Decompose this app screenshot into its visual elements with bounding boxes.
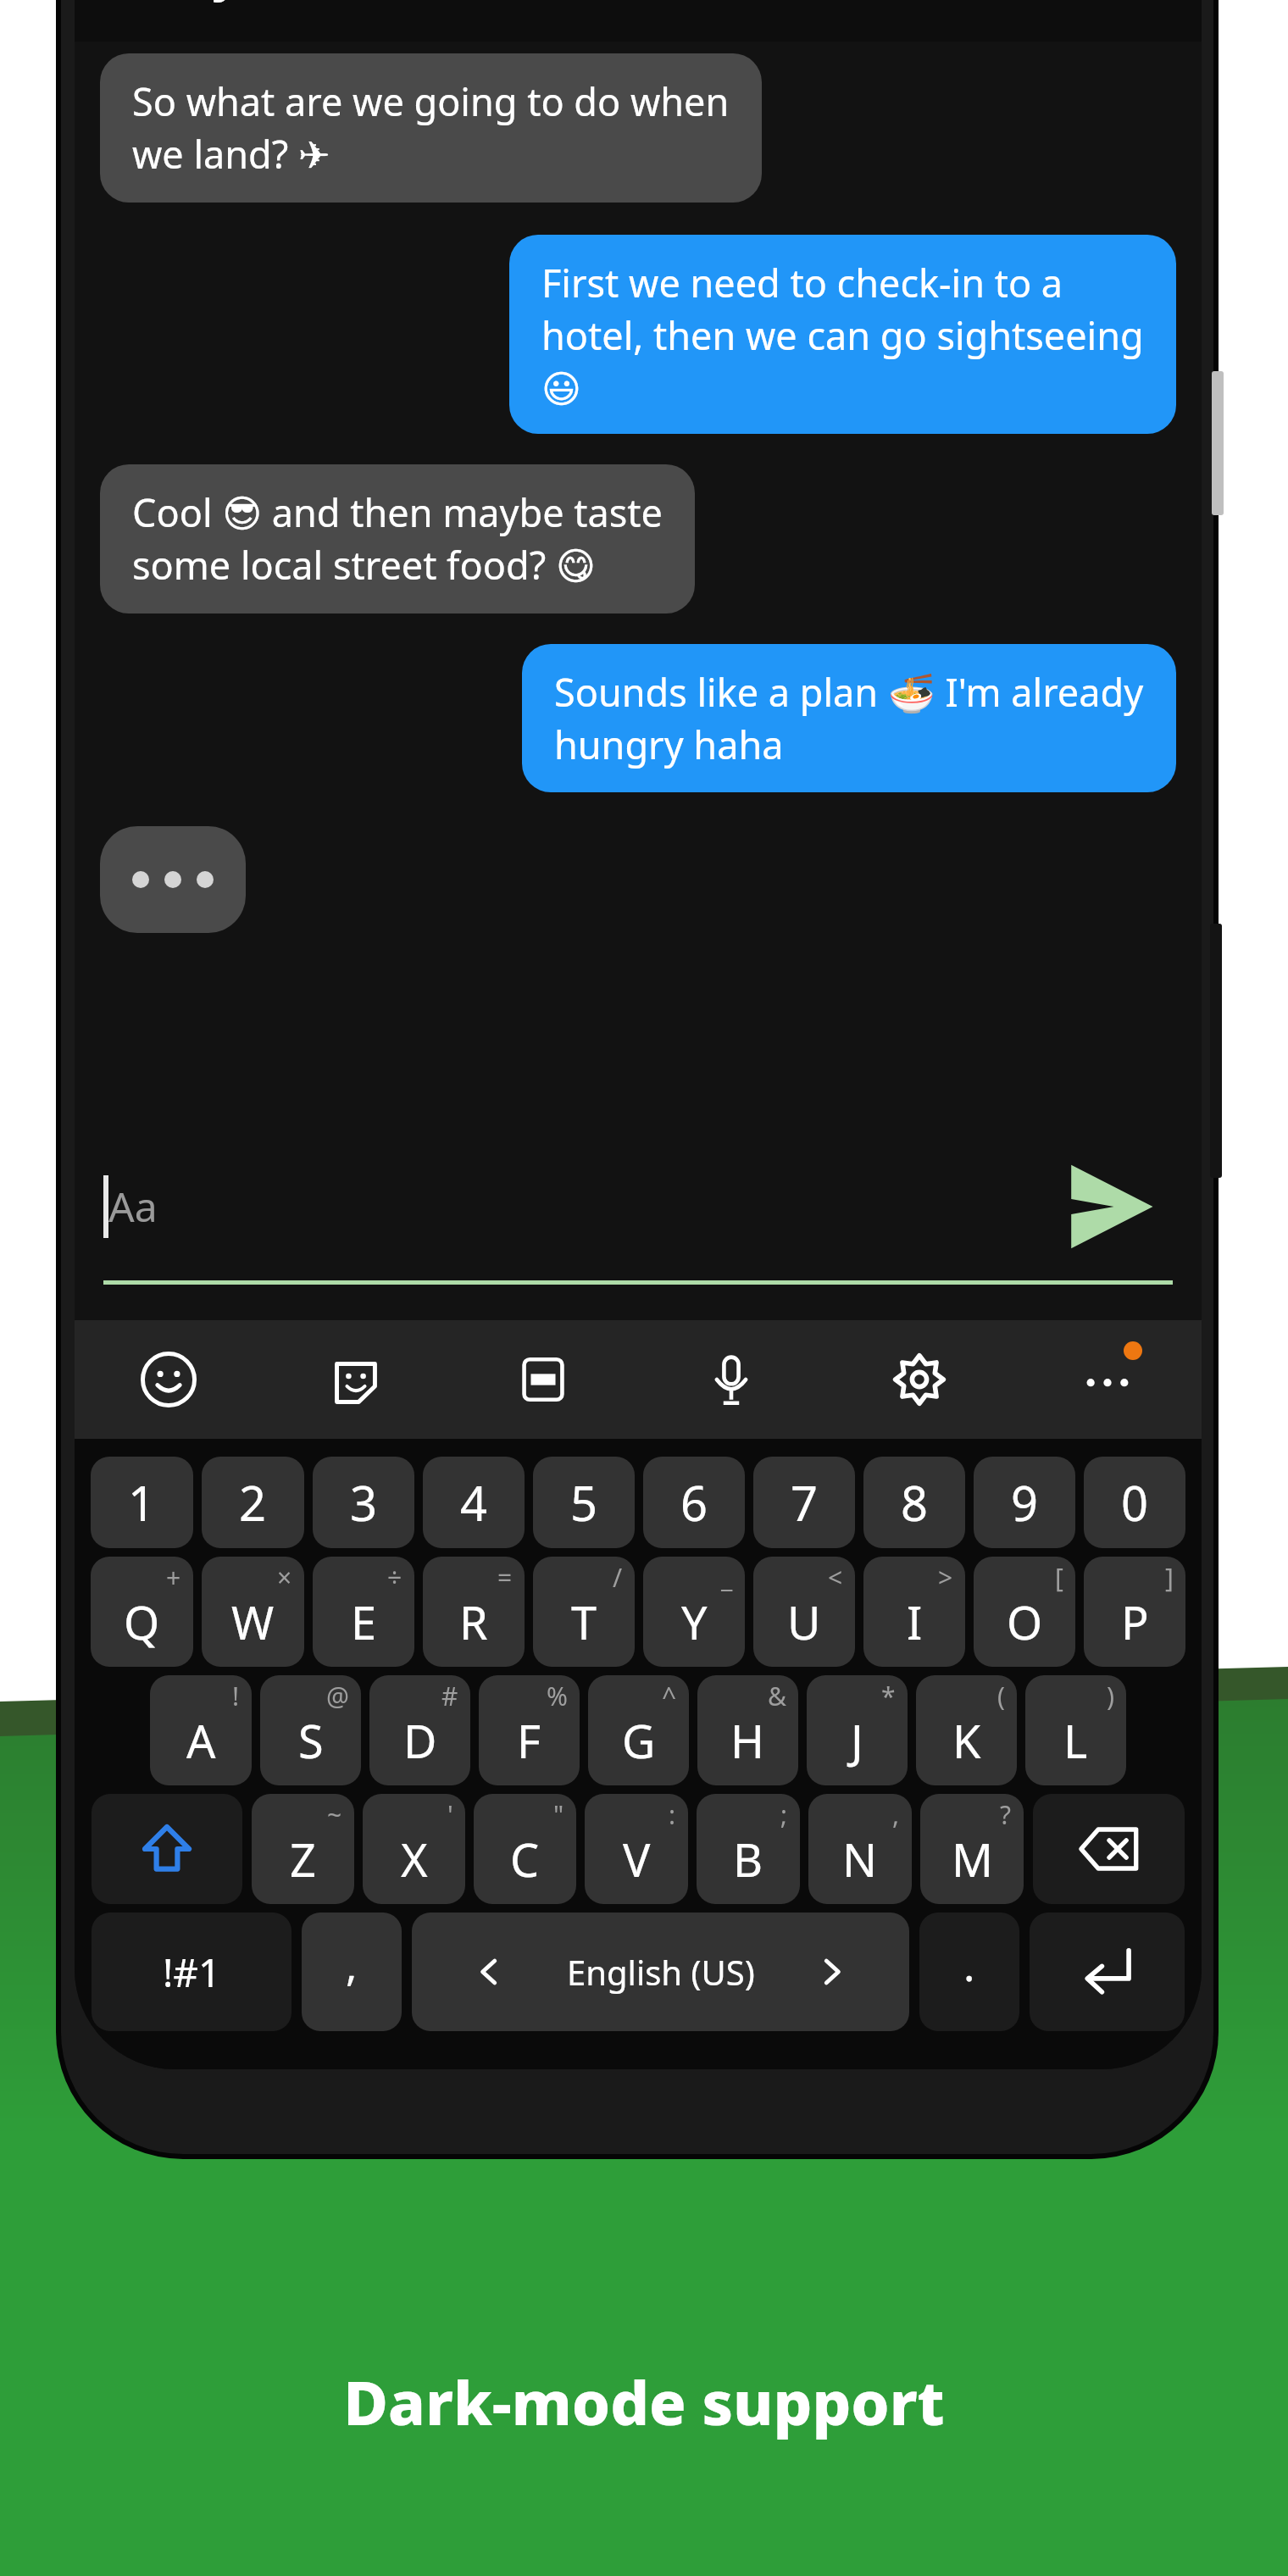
button[interactable]: ; <box>697 1794 800 1904</box>
staticText: J <box>851 1709 863 1772</box>
button[interactable]: English (US) <box>412 1913 909 2031</box>
button[interactable]: Shift <box>92 1794 242 1904</box>
staticText: Z <box>290 1828 316 1890</box>
button[interactable]: Voice input <box>637 1320 825 1439</box>
button[interactable]: % <box>479 1675 580 1785</box>
staticText: . <box>963 1936 975 1994</box>
staticText: K <box>952 1709 981 1772</box>
button[interactable]: 7 <box>753 1457 855 1548</box>
staticText: O <box>1007 1591 1043 1653</box>
button[interactable]: ( <box>916 1675 1017 1785</box>
staticText: E <box>351 1591 377 1653</box>
staticText: !#1 <box>163 1946 221 1999</box>
staticText: = <box>497 1560 513 1595</box>
button[interactable]: & <box>697 1675 798 1785</box>
button[interactable]: , <box>808 1794 912 1904</box>
button[interactable]: = <box>423 1557 525 1667</box>
button[interactable]: < <box>753 1557 855 1667</box>
button[interactable]: 5 <box>533 1457 635 1548</box>
staticText: A <box>186 1709 216 1772</box>
staticText: So what are we going to do when we land?… <box>132 75 730 180</box>
button[interactable]: GIF <box>449 1320 637 1439</box>
button[interactable]: 2 <box>202 1457 304 1548</box>
staticText: ) <box>1107 1679 1114 1713</box>
button[interactable]: / <box>533 1557 635 1667</box>
staticText: Aa <box>108 1179 158 1234</box>
staticText: C <box>510 1828 540 1890</box>
staticText: N <box>842 1828 878 1890</box>
button[interactable]: @ <box>260 1675 361 1785</box>
staticText: " <box>553 1797 564 1832</box>
button[interactable]: ) <box>1025 1675 1126 1785</box>
button[interactable]: 8 <box>863 1457 965 1548</box>
button[interactable]: First we need to check-in to a hotel, th… <box>509 235 1176 434</box>
button[interactable]: ' <box>363 1794 465 1904</box>
button[interactable]: Settings <box>825 1320 1013 1439</box>
staticText: ~ <box>327 1797 342 1832</box>
staticText: ( <box>997 1679 1005 1713</box>
staticText: + <box>166 1560 181 1595</box>
button[interactable]: 9 <box>974 1457 1075 1548</box>
staticText: 8 <box>901 1470 929 1535</box>
staticText: * <box>881 1679 896 1713</box>
button[interactable]: Backspace <box>1033 1794 1185 1904</box>
button[interactable]: . <box>919 1913 1019 2031</box>
button[interactable]: 6 <box>643 1457 745 1548</box>
button[interactable]: 1 <box>91 1457 193 1548</box>
button[interactable]: ~ <box>252 1794 354 1904</box>
button[interactable]: 0 <box>1084 1457 1185 1548</box>
button[interactable]: + <box>91 1557 193 1667</box>
button[interactable]: !#1 <box>92 1913 291 2031</box>
button[interactable]: ! <box>150 1675 252 1785</box>
staticText: ! <box>232 1679 240 1713</box>
button[interactable]: Stickers <box>262 1320 449 1439</box>
staticText: : <box>669 1797 676 1832</box>
button[interactable] <box>100 826 246 933</box>
button[interactable]: _ <box>643 1557 745 1667</box>
button[interactable]: Enter <box>1030 1913 1185 2031</box>
button[interactable]: ] <box>1084 1557 1185 1667</box>
button[interactable]: ^ <box>588 1675 689 1785</box>
staticText: 6 <box>680 1470 708 1535</box>
button[interactable]: Aa <box>103 1132 1046 1280</box>
button[interactable]: Sounds like a plan 🍜 I'm already hungry … <box>522 644 1176 792</box>
staticText: , <box>892 1797 900 1832</box>
button[interactable]: ÷ <box>313 1557 414 1667</box>
staticText: ? <box>1000 1797 1012 1832</box>
staticText: 2 <box>239 1470 267 1535</box>
button[interactable]: * <box>807 1675 908 1785</box>
button[interactable]: > <box>863 1557 965 1667</box>
staticText: F <box>517 1709 541 1772</box>
button[interactable]: Emoji <box>75 1320 262 1439</box>
button[interactable]: 4 <box>423 1457 525 1548</box>
staticText: [ <box>1055 1560 1063 1595</box>
staticText: English (US) <box>567 1949 755 1995</box>
button[interactable]: More options <box>1013 1320 1202 1439</box>
button[interactable]: × <box>202 1557 304 1667</box>
staticText: ^ <box>662 1679 677 1713</box>
staticText: 4 <box>460 1470 488 1535</box>
button[interactable]: " <box>474 1794 576 1904</box>
staticText: Jessica <box>217 0 364 6</box>
staticText: 9 <box>1011 1470 1039 1535</box>
staticText: I <box>907 1591 923 1653</box>
staticText: B <box>733 1828 763 1890</box>
button[interactable]: 3 <box>313 1457 414 1548</box>
staticText: 1 <box>128 1470 156 1535</box>
button[interactable]: Send <box>1046 1143 1173 1270</box>
button[interactable]: ? <box>920 1794 1024 1904</box>
staticText: T <box>571 1591 597 1653</box>
button[interactable]: # <box>369 1675 470 1785</box>
button[interactable]: So what are we going to do when we land?… <box>100 53 762 203</box>
button[interactable]: : <box>585 1794 688 1904</box>
staticText: ÷ <box>387 1560 402 1595</box>
staticText: G <box>622 1709 656 1772</box>
staticText: 5 <box>570 1470 598 1535</box>
button[interactable]: , <box>302 1913 402 2031</box>
button[interactable]: [ <box>974 1557 1075 1667</box>
staticText: D <box>403 1709 437 1772</box>
staticText: ' <box>447 1797 453 1832</box>
button[interactable]: Cool 😎 and then maybe taste some local s… <box>100 464 695 613</box>
staticText: L <box>1063 1709 1088 1772</box>
